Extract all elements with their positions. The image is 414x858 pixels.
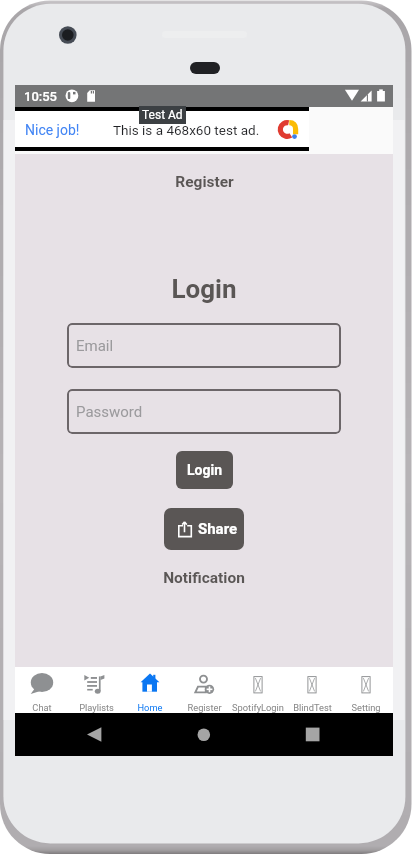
button[interactable]: Password bbox=[67, 389, 341, 434]
staticText: Email bbox=[76, 337, 114, 355]
button[interactable]: Login bbox=[176, 451, 233, 489]
button[interactable]: Setting bbox=[339, 667, 393, 713]
staticText: Login bbox=[171, 274, 237, 304]
staticText: Chat bbox=[32, 702, 52, 713]
staticText: Notification bbox=[163, 569, 245, 587]
button[interactable]: Recent apps bbox=[281, 713, 345, 756]
button[interactable]: Nice job! bbox=[15, 107, 309, 151]
staticText: Setting bbox=[351, 702, 381, 713]
staticText: Password bbox=[76, 403, 143, 421]
staticText: 10:55 bbox=[24, 89, 58, 104]
button[interactable]: Playlists bbox=[69, 667, 123, 713]
staticText: Register bbox=[175, 173, 234, 191]
staticText: Test Ad bbox=[142, 108, 183, 122]
staticText: Register bbox=[187, 702, 222, 713]
staticText: Playlists bbox=[79, 702, 114, 713]
button[interactable]: Notification bbox=[15, 569, 393, 587]
button[interactable]: Chat bbox=[15, 667, 69, 713]
button[interactable]: Register bbox=[15, 173, 393, 191]
staticText: Nice job! bbox=[25, 122, 80, 138]
staticText: Login bbox=[187, 462, 223, 478]
button[interactable]: Back bbox=[70, 713, 134, 756]
button[interactable]: Share bbox=[164, 508, 244, 550]
button[interactable]: Home bbox=[172, 713, 236, 756]
button[interactable]: SpotifyLogin bbox=[231, 667, 285, 713]
button[interactable]: Email bbox=[67, 323, 341, 368]
button[interactable]: BlindTest bbox=[285, 667, 339, 713]
staticText: BlindTest bbox=[293, 702, 332, 713]
button[interactable]: Home bbox=[123, 667, 177, 713]
staticText: This is a 468x60 test ad. bbox=[113, 122, 260, 138]
staticText: Share bbox=[198, 520, 238, 538]
button[interactable]: Register bbox=[177, 667, 231, 713]
staticText: Home bbox=[137, 702, 163, 713]
staticText: SpotifyLogin bbox=[232, 702, 284, 713]
